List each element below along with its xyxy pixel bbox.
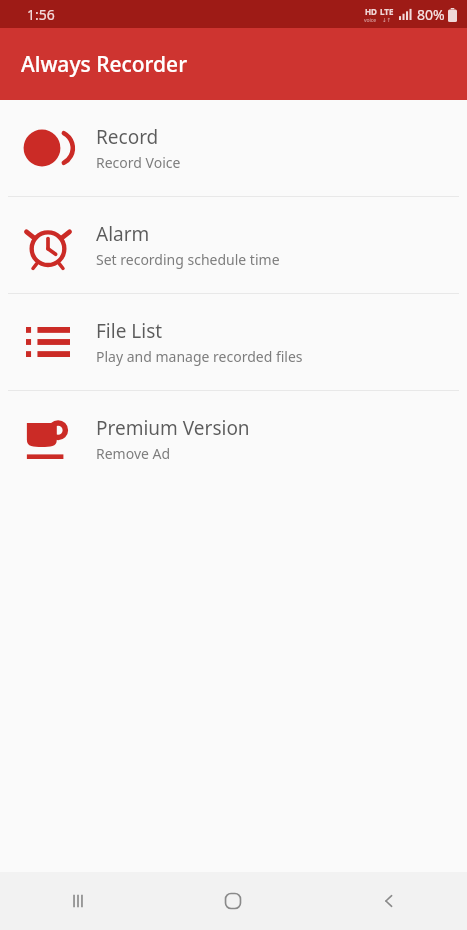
staticText: Record Voice (96, 153, 181, 172)
staticText: HD (365, 6, 377, 17)
staticText: Premium Version (96, 415, 250, 441)
staticText: Remove Ad (96, 444, 171, 463)
other: File list (26, 327, 70, 357)
staticText: LTE (380, 6, 394, 17)
button[interactable]: Premium version (0, 391, 467, 487)
button[interactable]: Record (0, 100, 467, 196)
staticText: Alarm (96, 221, 150, 247)
button[interactable]: Home (155, 872, 311, 930)
other: Alarm (25, 222, 71, 268)
button[interactable]: Back (311, 872, 467, 930)
other: Premium version (26, 419, 70, 459)
button[interactable]: Alarm (0, 197, 467, 293)
staticText: File List (96, 318, 163, 344)
button[interactable]: File list (0, 294, 467, 390)
staticText: Record (96, 124, 159, 150)
staticText: 1:56 (27, 5, 55, 24)
staticText: voice (364, 17, 377, 24)
staticText: ↓↑ (382, 17, 392, 23)
staticText: Always Recorder (21, 50, 188, 79)
staticText: Set recording schedule time (96, 250, 280, 269)
staticText: Play and manage recorded files (96, 347, 303, 366)
other: Record (23, 128, 73, 168)
staticText: 80% (417, 5, 445, 24)
button[interactable]: Recent apps (0, 872, 155, 930)
